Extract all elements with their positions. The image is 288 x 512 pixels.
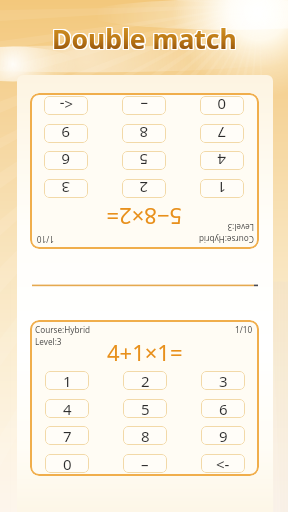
staticText: – <box>140 96 148 115</box>
staticText: <- <box>216 454 230 473</box>
staticText: Double match <box>52 20 237 56</box>
button[interactable]: 1 <box>200 179 244 198</box>
button[interactable]: 5 <box>123 399 167 418</box>
button[interactable]: 8 <box>123 426 167 445</box>
staticText: Course:Hybrid <box>198 234 254 245</box>
button[interactable]: 1 <box>45 371 89 390</box>
staticText: Course:Hybrid <box>35 324 91 335</box>
button[interactable]: 2 <box>122 179 166 198</box>
button[interactable]: 8 <box>122 124 166 143</box>
staticText: Double match <box>52 22 237 58</box>
staticText: 7 <box>63 426 72 445</box>
staticText: 9 <box>219 426 228 445</box>
button[interactable]: – <box>123 454 167 473</box>
staticText: 2 <box>139 179 148 198</box>
staticText: 5 <box>141 399 150 418</box>
staticText: 7 <box>217 124 226 143</box>
button[interactable]: – <box>122 96 166 115</box>
button[interactable]: 6 <box>201 399 245 418</box>
staticText: 8 <box>141 426 150 445</box>
staticText: 0 <box>63 454 72 473</box>
staticText: 4 <box>63 399 72 418</box>
button[interactable]: 9 <box>44 124 88 143</box>
staticText: 5 <box>139 151 148 170</box>
button[interactable]: 3 <box>44 179 88 198</box>
staticText: Double match <box>51 22 236 58</box>
button[interactable]: 7 <box>45 426 89 445</box>
staticText: Double match <box>53 22 238 58</box>
staticText: – <box>141 454 149 473</box>
staticText: 3 <box>61 179 70 198</box>
staticText: Level:3 <box>227 222 254 233</box>
staticText: 1/10 <box>235 324 253 335</box>
staticText: Level:3 <box>35 336 62 347</box>
staticText: 8 <box>139 124 148 143</box>
staticText: Double match <box>51 20 236 56</box>
button[interactable]: <- <box>201 454 245 473</box>
staticText: 6 <box>61 151 70 170</box>
staticText: 4+1×1= <box>107 337 183 363</box>
staticText: 4 <box>217 151 226 170</box>
staticText: 2 <box>141 371 150 390</box>
button[interactable]: 7 <box>200 124 244 143</box>
staticText: 3 <box>219 371 228 390</box>
staticText: Double match <box>51 21 236 57</box>
staticText: <- <box>59 96 73 115</box>
button[interactable]: 0 <box>45 454 89 473</box>
staticText: 9 <box>61 124 70 143</box>
staticText: 1/10 <box>36 234 54 245</box>
button[interactable]: 6 <box>44 151 88 170</box>
button[interactable]: 2 <box>123 371 167 390</box>
button[interactable]: 5 <box>122 151 166 170</box>
staticText: 1 <box>63 371 72 390</box>
button[interactable]: 3 <box>201 371 245 390</box>
staticText: Double match <box>53 20 238 56</box>
staticText: Double match <box>52 21 237 57</box>
button[interactable]: 4 <box>200 151 244 170</box>
button[interactable]: <- <box>44 96 88 115</box>
staticText: 1 <box>217 179 226 198</box>
staticText: 5−8×2= <box>106 206 182 232</box>
staticText: 0 <box>217 96 226 115</box>
staticText: Double match <box>53 21 238 57</box>
button[interactable]: 0 <box>200 96 244 115</box>
button[interactable]: 9 <box>201 426 245 445</box>
button[interactable]: 4 <box>45 399 89 418</box>
staticText: 6 <box>219 399 228 418</box>
